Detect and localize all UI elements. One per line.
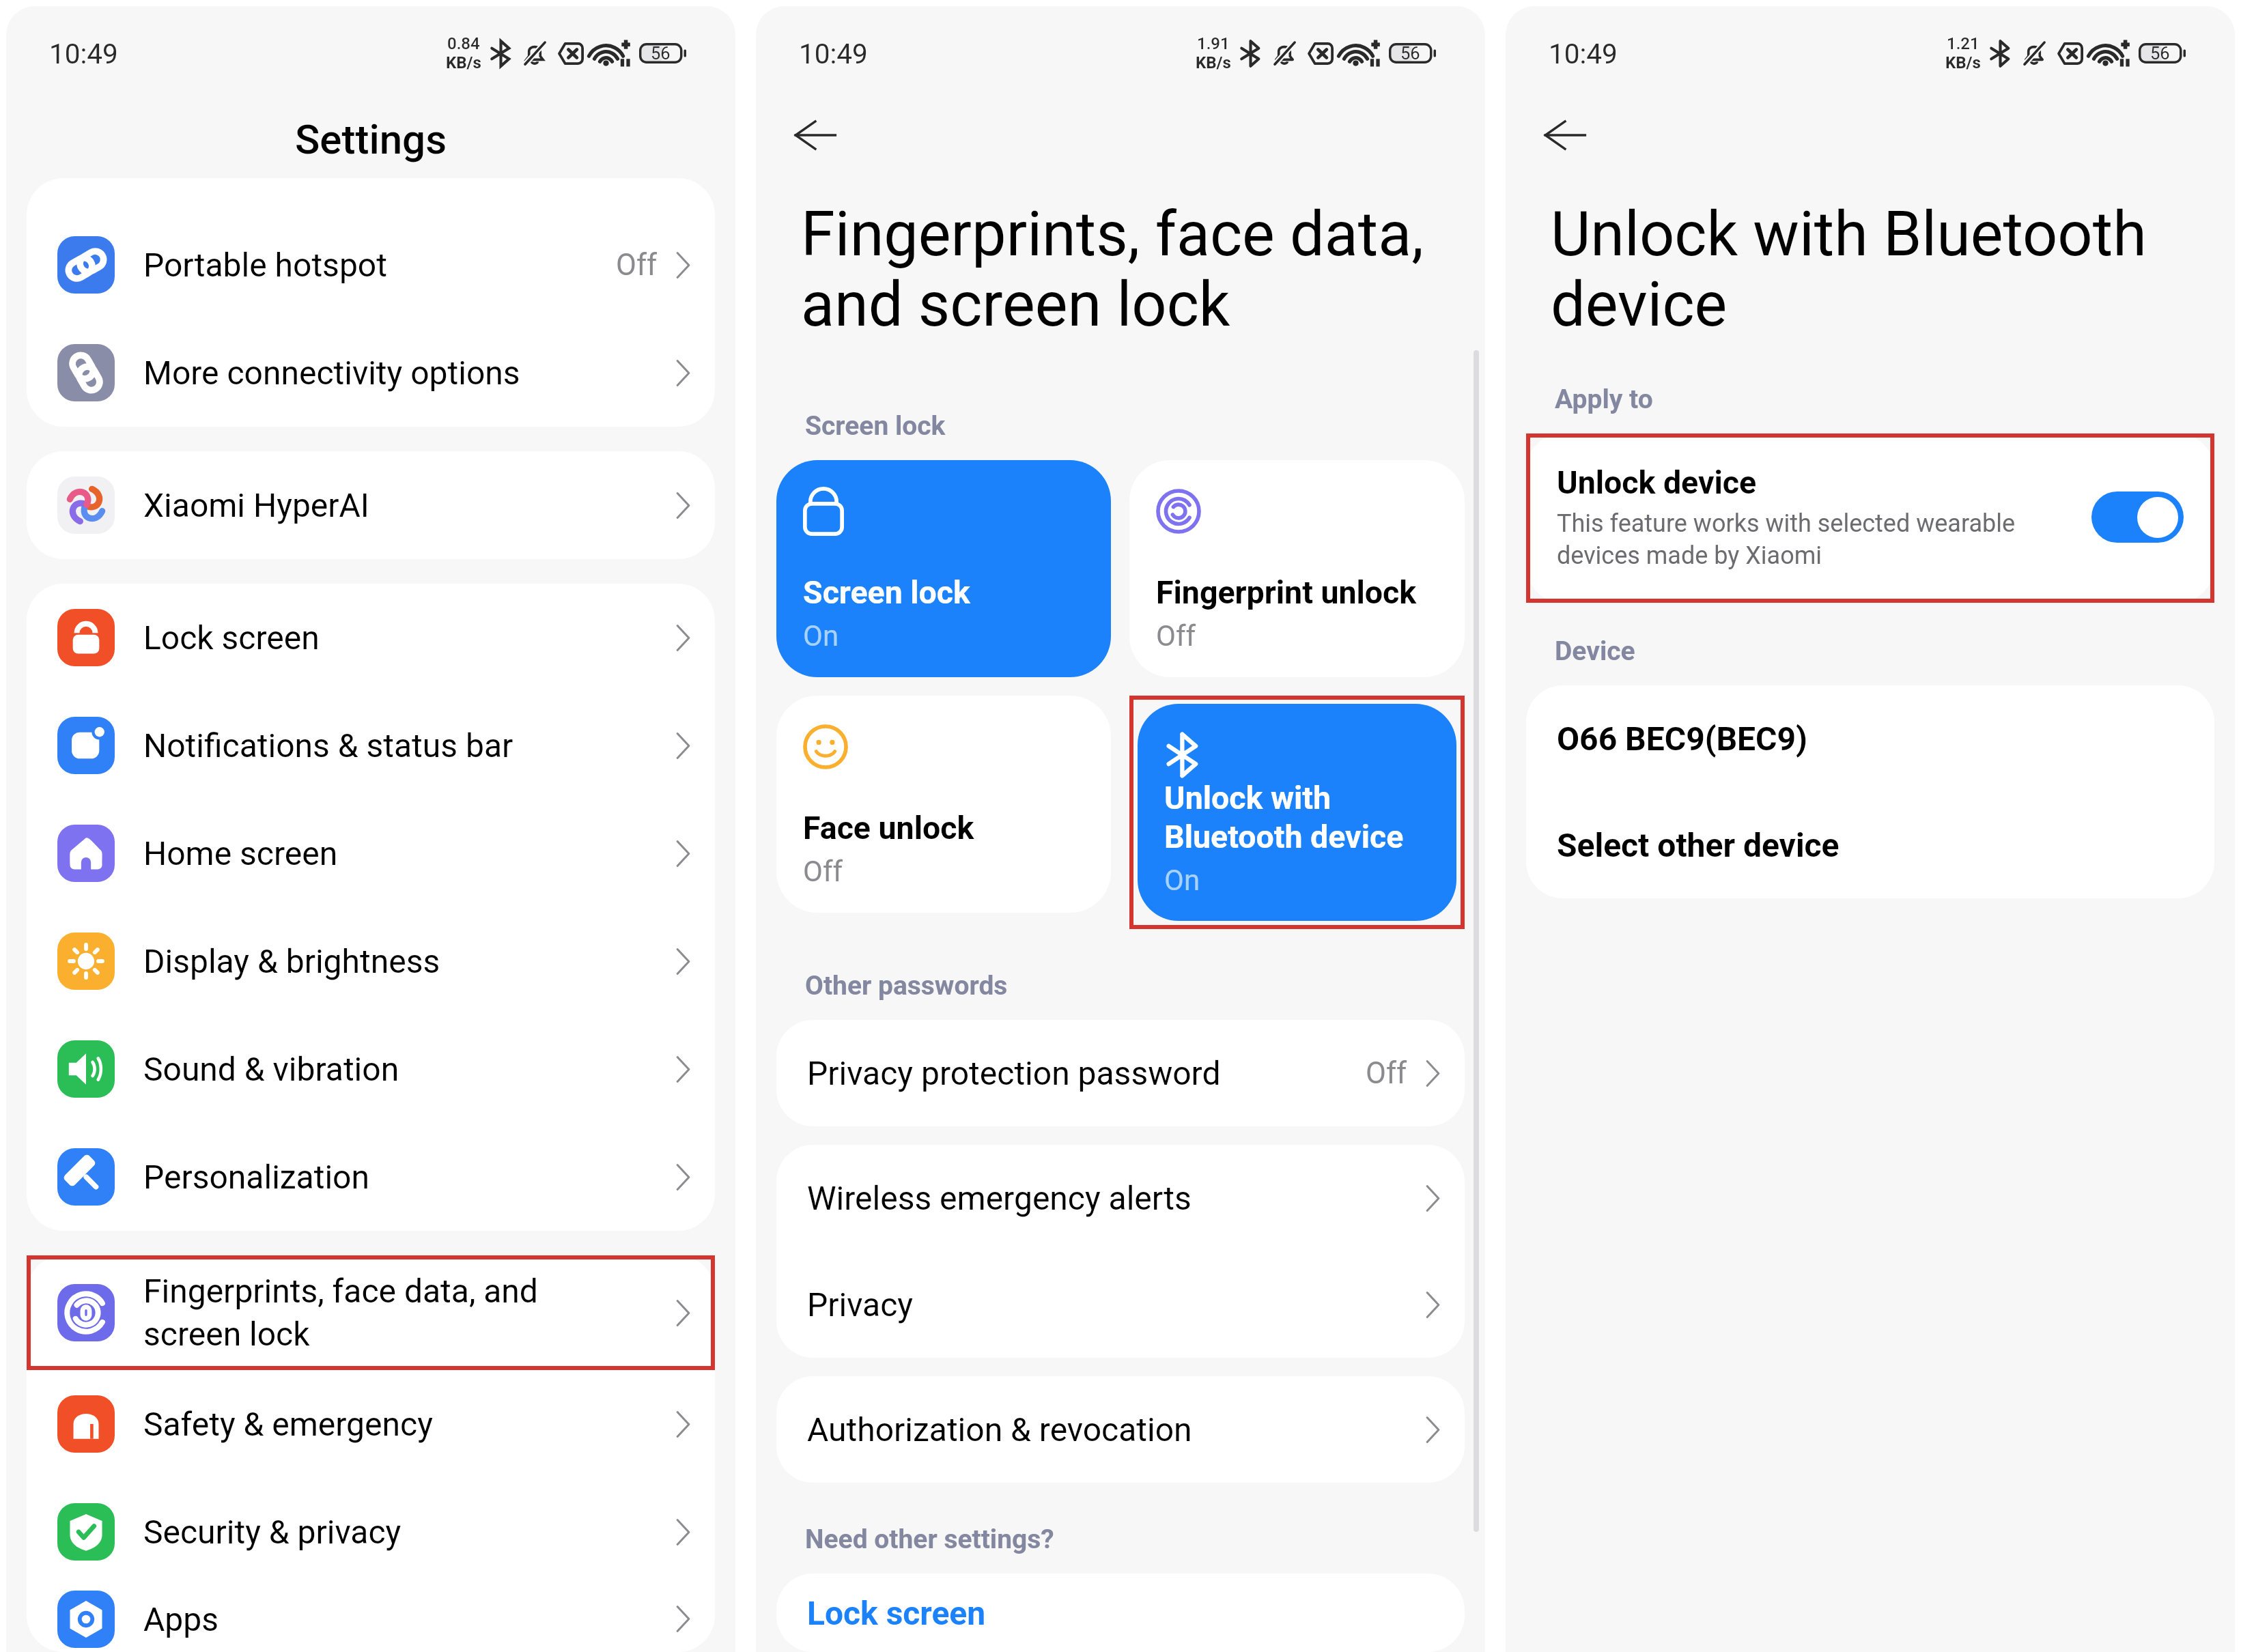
button[interactable]: Select other device: [1526, 792, 2214, 898]
staticText: 10:49: [799, 38, 868, 70]
button[interactable]: Face unlock: [776, 696, 1111, 913]
staticText: Apps: [143, 1600, 219, 1638]
staticText: Fingerprints, face data, and screen lock: [801, 199, 1424, 341]
staticText: Fingerprint unlock: [1156, 574, 1417, 611]
staticText: 56: [1400, 43, 1420, 63]
staticText: More connectivity options: [143, 354, 520, 392]
button[interactable]: Unlock device: [1526, 433, 2214, 603]
staticText: Unlock with Bluetooth device: [1551, 199, 2147, 341]
button[interactable]: Xiaomi HyperAI: [27, 451, 715, 559]
staticText: Unlock with Bluetooth device: [1164, 780, 1404, 855]
staticText: Settings: [295, 115, 447, 163]
button[interactable]: Fingerprints, face data, and screen lock: [27, 1255, 715, 1370]
staticText: Security & privacy: [143, 1513, 401, 1551]
button[interactable]: Back: [1534, 104, 1596, 166]
staticText: Screen lock: [805, 410, 946, 442]
staticText: Xiaomi HyperAI: [143, 486, 369, 524]
staticText: 0.84: [447, 34, 480, 53]
button[interactable]: O66 BEC9(BEC9): [1526, 685, 2214, 792]
button[interactable]: More connectivity options: [27, 319, 715, 427]
button[interactable]: Back: [785, 104, 846, 166]
staticText: Unlock device: [1557, 464, 1757, 501]
staticText: Wireless emergency alerts: [807, 1179, 1192, 1217]
staticText: Privacy: [807, 1285, 914, 1324]
staticText: Display & brightness: [143, 942, 440, 980]
staticText: On: [803, 619, 839, 653]
button[interactable]: Fingerprint unlock: [1129, 460, 1465, 677]
staticText: KB/s: [1196, 53, 1231, 72]
staticText: KB/s: [446, 53, 481, 72]
staticText: 56: [651, 43, 671, 63]
staticText: Privacy protection password: [807, 1054, 1221, 1092]
staticText: Lock screen: [143, 618, 320, 657]
button[interactable]: Security & privacy: [27, 1478, 715, 1586]
staticText: Device: [1555, 636, 1635, 667]
staticText: Fingerprints, face data, and screen lock: [143, 1272, 538, 1354]
staticText: Lock screen: [807, 1594, 986, 1632]
staticText: KB/s: [1945, 53, 1981, 72]
button[interactable]: Authorization & revocation: [776, 1376, 1465, 1483]
button[interactable]: Lock screen: [27, 584, 715, 692]
staticText: 10:49: [1549, 38, 1618, 70]
staticText: Authorization & revocation: [807, 1410, 1192, 1449]
staticText: Screen lock: [803, 574, 970, 611]
button[interactable]: Privacy protection password: [776, 1020, 1465, 1126]
staticText: On: [1164, 864, 1200, 896]
button[interactable]: Safety & emergency: [27, 1370, 715, 1478]
staticText: Off: [616, 248, 658, 283]
button[interactable]: Sound & vibration: [27, 1015, 715, 1123]
button[interactable]: Lock screen: [776, 1573, 1465, 1652]
button[interactable]: Screen lock: [776, 460, 1111, 677]
button[interactable]: Privacy: [776, 1251, 1465, 1358]
button[interactable]: Unlock device toggle: [2091, 492, 2184, 543]
staticText: Portable hotspot: [143, 246, 387, 284]
button[interactable]: Personalization: [27, 1123, 715, 1231]
staticText: Off: [1366, 1056, 1407, 1091]
staticText: Notifications & status bar: [143, 726, 513, 765]
staticText: Need other settings?: [805, 1524, 1054, 1555]
staticText: Select other device: [1557, 826, 1840, 864]
button[interactable]: Apps: [27, 1586, 715, 1652]
staticText: Other passwords: [805, 970, 1008, 1001]
staticText: Off: [803, 855, 843, 888]
staticText: Personalization: [143, 1158, 369, 1196]
staticText: Apply to: [1555, 384, 1653, 415]
staticText: Safety & emergency: [143, 1405, 433, 1443]
button[interactable]: Notifications & status bar: [27, 692, 715, 799]
staticText: 1.21: [1947, 34, 1979, 53]
staticText: 10:49: [49, 38, 118, 70]
staticText: Face unlock: [803, 810, 974, 846]
button[interactable]: Display & brightness: [27, 907, 715, 1015]
button[interactable]: Wireless emergency alerts: [776, 1145, 1465, 1251]
staticText: 56: [2150, 43, 2170, 63]
staticText: Home screen: [143, 834, 338, 872]
staticText: This feature works with selected wearabl…: [1557, 509, 2016, 570]
staticText: Sound & vibration: [143, 1050, 399, 1088]
button[interactable]: Portable hotspot: [27, 211, 715, 319]
staticText: Off: [1156, 619, 1196, 653]
button[interactable]: Unlock with Bluetooth device: [1138, 704, 1456, 921]
staticText: 1.91: [1197, 34, 1230, 53]
button[interactable]: Home screen: [27, 799, 715, 907]
staticText: O66 BEC9(BEC9): [1557, 720, 1807, 758]
